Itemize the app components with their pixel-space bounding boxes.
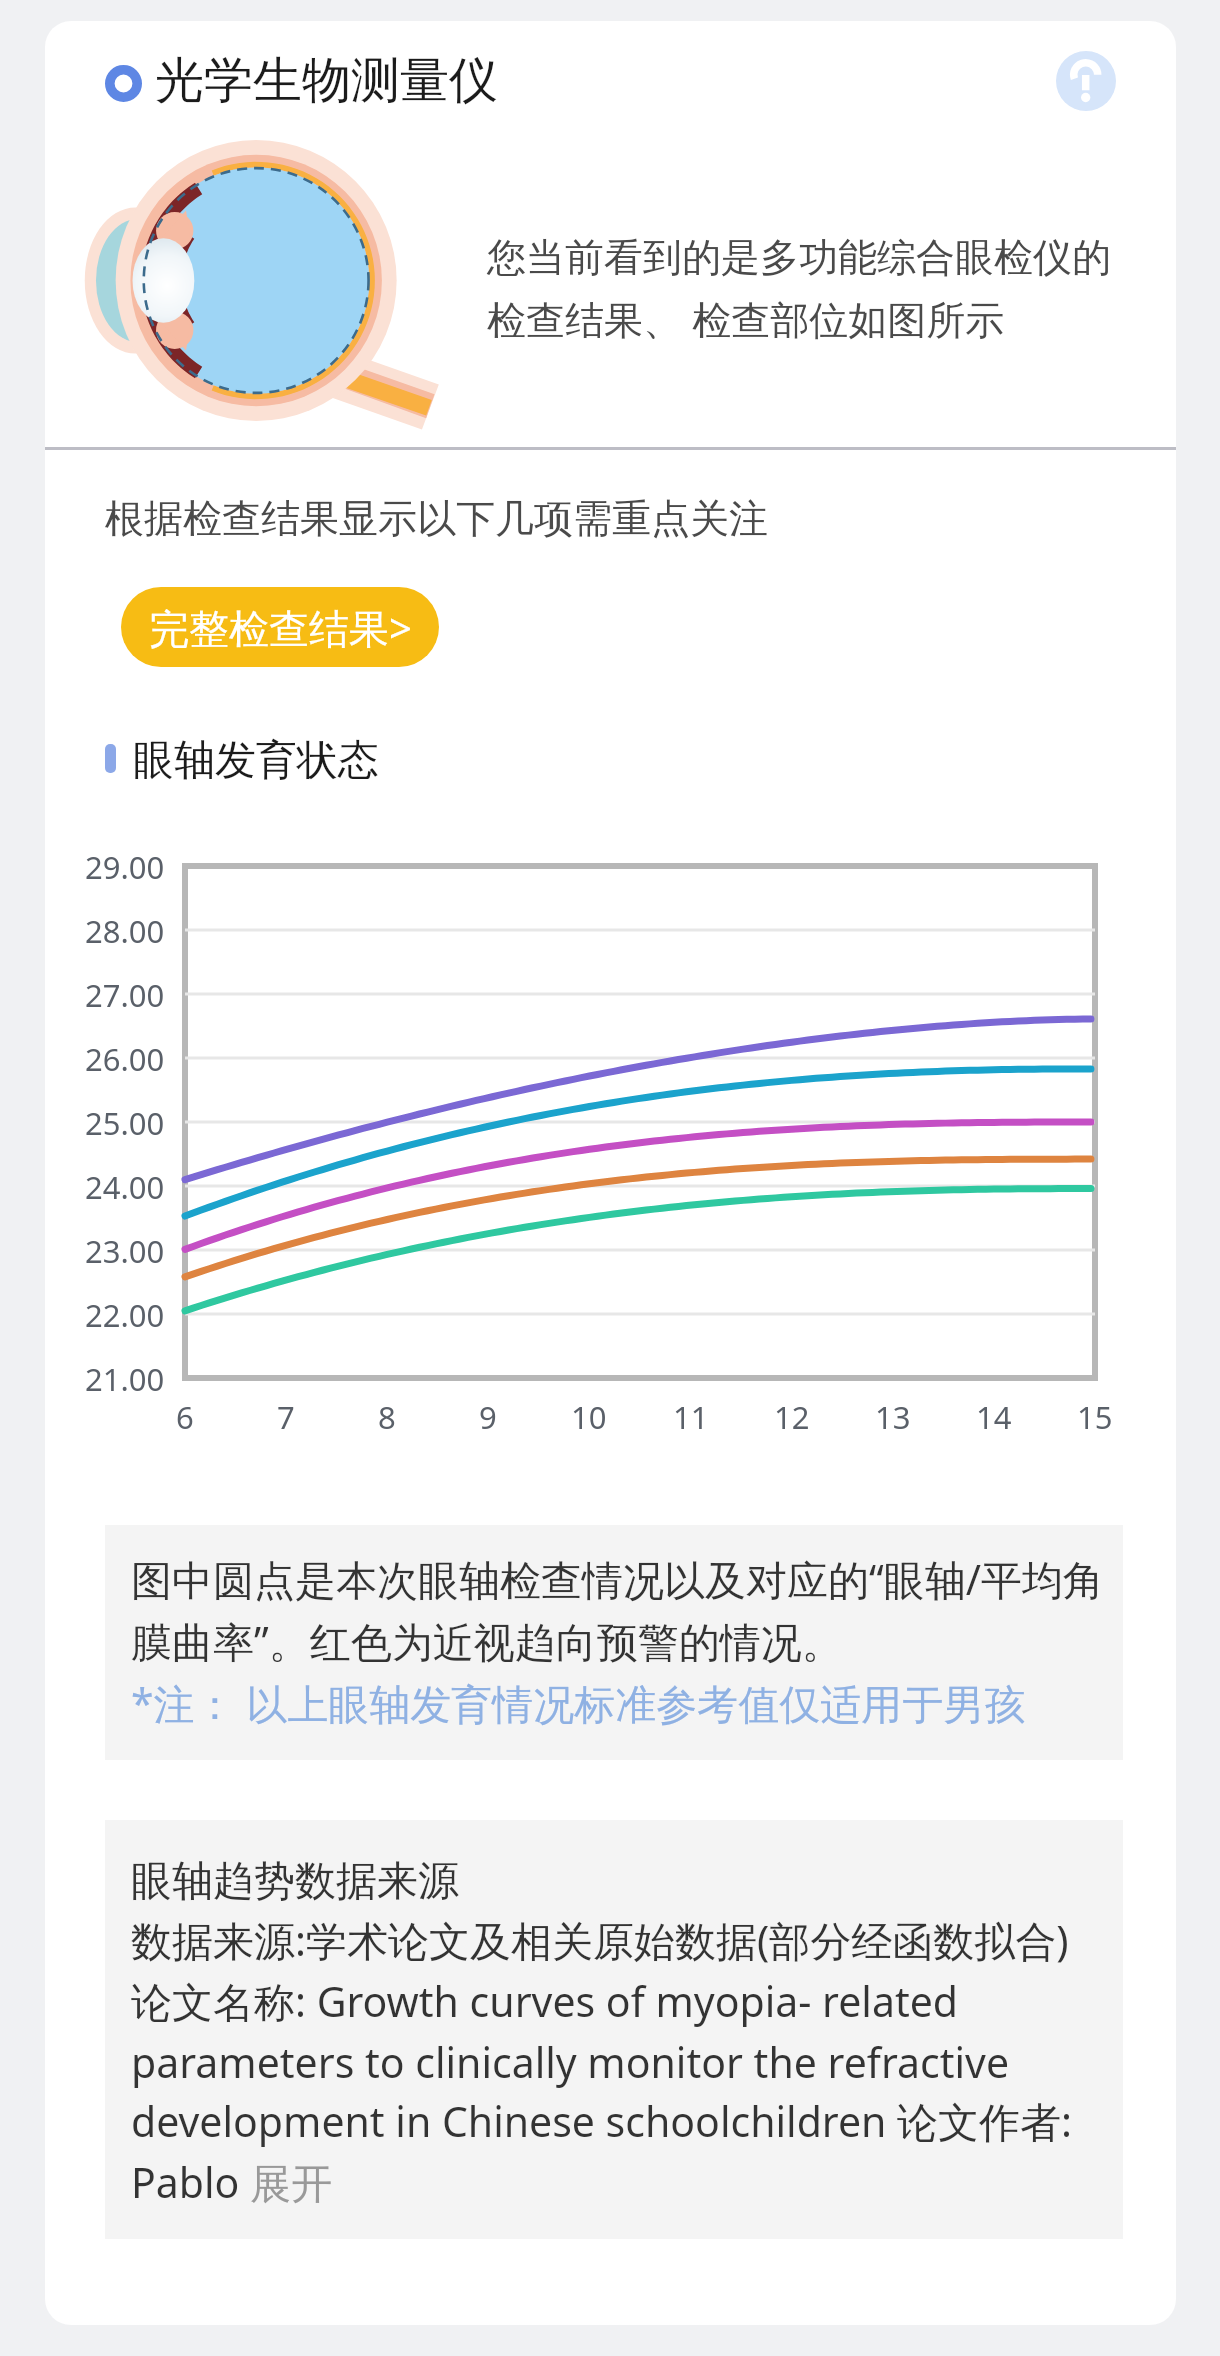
staticText: 23.00 <box>85 1230 165 1272</box>
staticText: 完整检查结果> <box>149 600 412 655</box>
staticText: 25.00 <box>85 1102 165 1144</box>
button[interactable]: 完整检查结果> <box>121 587 439 667</box>
staticText: 12 <box>774 1396 810 1438</box>
staticText: 22.00 <box>85 1294 165 1336</box>
staticText: 6 <box>176 1396 194 1438</box>
staticText: 光学生物测量仪 <box>155 50 498 112</box>
staticText: 图中圆点是本次眼轴检查情况以及对应的“眼轴/平均角膜曲率”。红色为近视趋向预警的… <box>131 1551 1131 1731</box>
staticText: 29.00 <box>85 846 165 888</box>
staticText: 15 <box>1077 1396 1113 1438</box>
staticText: 根据检查结果显示以下几项需重点关注 <box>105 494 768 543</box>
staticText: 11 <box>673 1396 709 1438</box>
button[interactable]: Device <box>105 65 142 102</box>
button[interactable]: Help <box>1056 51 1116 111</box>
staticText: 13 <box>875 1396 911 1438</box>
staticText: 7 <box>277 1396 295 1438</box>
staticText: 21.00 <box>85 1358 165 1400</box>
staticText: 14 <box>976 1396 1012 1438</box>
staticText: 9 <box>479 1396 497 1438</box>
staticText: 您当前看到的是多功能综合眼检仪的检查结果、 检查部位如图所示 <box>487 233 1127 345</box>
staticText: 眼轴发育状态 <box>133 735 379 787</box>
staticText: 10 <box>571 1396 607 1438</box>
staticText: 27.00 <box>85 974 165 1016</box>
staticText: 28.00 <box>85 910 165 952</box>
staticText: 24.00 <box>85 1166 165 1208</box>
staticText: 眼轴趋势数据来源 数据来源:学术论文及相关原始数据(部分经函数拟合)论文名称: … <box>131 1856 1106 2210</box>
staticText: 26.00 <box>85 1038 165 1080</box>
staticText: 8 <box>378 1396 396 1438</box>
